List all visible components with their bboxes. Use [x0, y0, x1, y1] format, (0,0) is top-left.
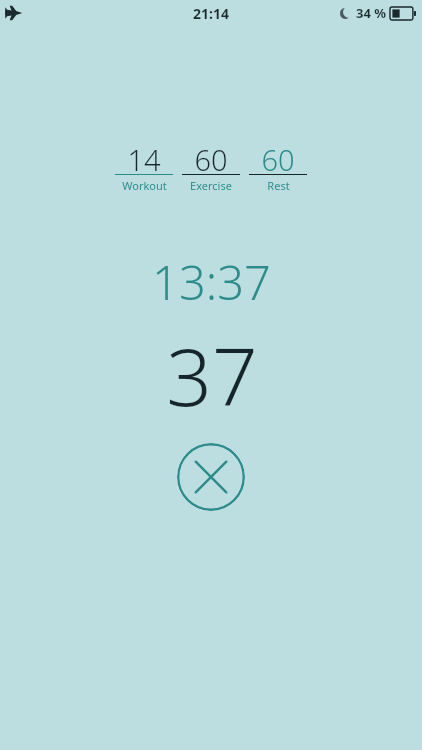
staticText: 14: [127, 140, 161, 171]
other: Airplane mode: [5, 5, 23, 21]
button[interactable]: 60: [182, 140, 240, 193]
button[interactable]: Cancel workout: [177, 443, 245, 511]
other: Do not disturb: [340, 8, 351, 19]
staticText: Workout: [122, 178, 167, 193]
staticText: 13:37: [152, 250, 271, 314]
staticText: 60: [261, 140, 295, 171]
staticText: 60: [194, 140, 228, 171]
button[interactable]: 60: [249, 140, 307, 193]
staticText: 21:14: [193, 4, 229, 23]
staticText: Exercise: [190, 178, 232, 193]
staticText: 34 %: [356, 4, 386, 22]
staticText: 37: [166, 320, 258, 429]
staticText: Rest: [267, 178, 290, 193]
button[interactable]: 14: [115, 140, 173, 193]
